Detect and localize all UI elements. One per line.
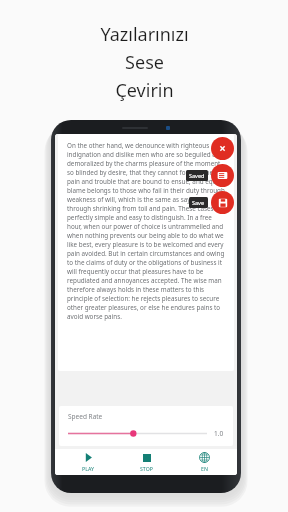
button[interactable]: Saved list bbox=[211, 164, 234, 187]
staticText: Sese bbox=[125, 50, 164, 75]
button[interactable]: PLAY bbox=[63, 450, 113, 474]
staticText: 1.0 bbox=[214, 429, 224, 438]
staticText: STOP bbox=[140, 465, 153, 472]
button[interactable] bbox=[68, 428, 207, 439]
staticText: Speed Rate bbox=[68, 412, 103, 421]
button[interactable]: STOP bbox=[121, 450, 171, 474]
staticText: Saved bbox=[189, 172, 205, 179]
staticText: PLAY bbox=[82, 465, 95, 472]
staticText: Save bbox=[192, 199, 205, 206]
button[interactable]: Close bbox=[211, 137, 234, 160]
button[interactable]: Save bbox=[211, 191, 234, 214]
button[interactable]: On the other hand, we denounce with righ… bbox=[58, 134, 234, 371]
staticText: Çevirin bbox=[115, 78, 174, 103]
staticText: EN bbox=[201, 465, 208, 472]
button[interactable]: EN bbox=[179, 450, 229, 474]
staticText: On the other hand, we denounce with righ… bbox=[67, 141, 225, 321]
staticText: Yazılarınızı bbox=[100, 22, 189, 47]
